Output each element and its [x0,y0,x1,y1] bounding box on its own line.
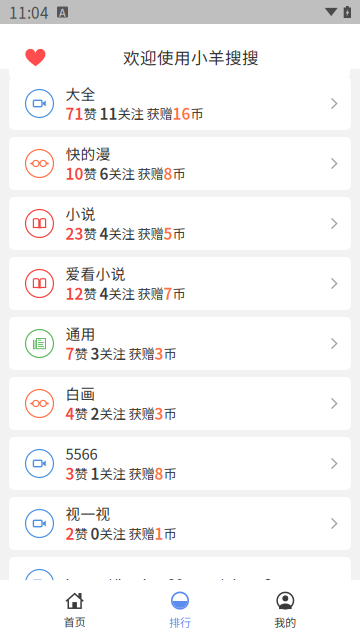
staticText: 3 [154,342,163,364]
staticText: 获赠 [128,343,154,363]
staticText: 币 [172,163,185,183]
staticText: 赞 [74,403,87,423]
staticText: 0 [90,522,99,544]
staticText: 赞 [74,343,87,363]
staticText: 1 [90,462,99,484]
staticText: 获赠 [137,223,163,243]
staticText: 4 [99,222,108,244]
staticText: 关注 [99,463,125,483]
button[interactable]: 我的 [233,581,338,640]
staticText: 1 [154,522,163,544]
staticText: 8 [154,462,163,484]
staticText: 关注 [99,403,125,423]
staticText: 11 [99,102,117,124]
staticText: 16 [172,102,190,124]
staticText: 获赠 [146,103,172,123]
staticText: 11:04 [9,1,49,23]
staticText: 关注 [117,103,143,123]
staticText: 赞 [83,223,96,243]
staticText: 12 [65,282,83,304]
staticText: 获赠 [137,283,163,303]
staticText: 爱看小说 [65,263,125,284]
staticText [96,103,99,123]
staticText: 视一视 [65,503,110,524]
staticText [96,163,99,183]
staticText: 关注 [108,283,134,303]
staticText: 7 [163,282,172,304]
staticText: 2 [90,402,99,424]
staticText: 币 [163,463,176,483]
staticText: 币 [172,283,185,303]
staticText: 3 [65,462,74,484]
staticText: 我的 [274,614,296,630]
staticText: 欢迎使用小羊搜搜 [123,45,259,69]
staticText: 通用 [65,323,95,344]
staticText: https://beabox20.com/photo?… [65,573,287,594]
button[interactable]: 排行 [127,581,233,640]
staticText: 关注 [99,343,125,363]
staticText: 71 [65,102,83,124]
button[interactable]: 大全 [9,77,351,130]
button[interactable]: 快的漫 [9,137,351,190]
staticText: 币 [190,103,203,123]
staticText: 快的漫 [65,143,110,164]
staticText: 4 [99,282,108,304]
staticText: 获赠 [137,163,163,183]
button[interactable]: 爱看小说 [9,257,351,310]
staticText: 赞 [74,463,87,483]
staticText: 3 [90,342,99,364]
staticText: 5 [163,222,172,244]
button[interactable]: 通用 [9,317,351,370]
staticText: 7 [65,342,74,364]
staticText: 关注 [108,163,134,183]
staticText: 大全 [65,83,95,104]
staticText: 排行 [169,614,191,630]
staticText: 币 [163,403,176,423]
staticText: 23 [65,222,83,244]
staticText: 币 [163,343,176,363]
staticText: 获赠 [128,463,154,483]
staticText: 关注 [99,523,125,543]
button[interactable]: 首页 [22,581,127,640]
staticText: 币 [163,523,176,543]
staticText: 5566 [65,443,97,464]
button[interactable]: https://beabox20.com/photo?… [9,557,351,610]
staticText: 赞 [83,283,96,303]
staticText: A [59,4,66,20]
staticText: 币 [172,223,185,243]
staticText: 10 [65,162,83,184]
staticText: 白画 [65,383,95,404]
staticText: 小说 [65,203,95,224]
staticText [96,223,99,243]
button[interactable]: 视一视 [9,497,351,550]
staticText [96,283,99,303]
staticText [134,283,137,303]
staticText: 获赠 [128,523,154,543]
staticText: 赞 [74,523,87,543]
staticText: 获赠 [128,403,154,423]
staticText: 8 [163,162,172,184]
button[interactable]: 白画 [9,377,351,430]
staticText: 6 [99,162,108,184]
staticText: 首页 [64,614,86,630]
staticText: 赞 [83,103,96,123]
staticText: 2 [65,522,74,544]
staticText [134,223,137,243]
button[interactable]: 小说 [9,197,351,250]
button[interactable]: 5566 [9,437,351,490]
staticText: 关注 [108,223,134,243]
staticText [134,163,137,183]
staticText: 4 [65,402,74,424]
staticText: 3 [154,402,163,424]
staticText: 赞 [83,163,96,183]
